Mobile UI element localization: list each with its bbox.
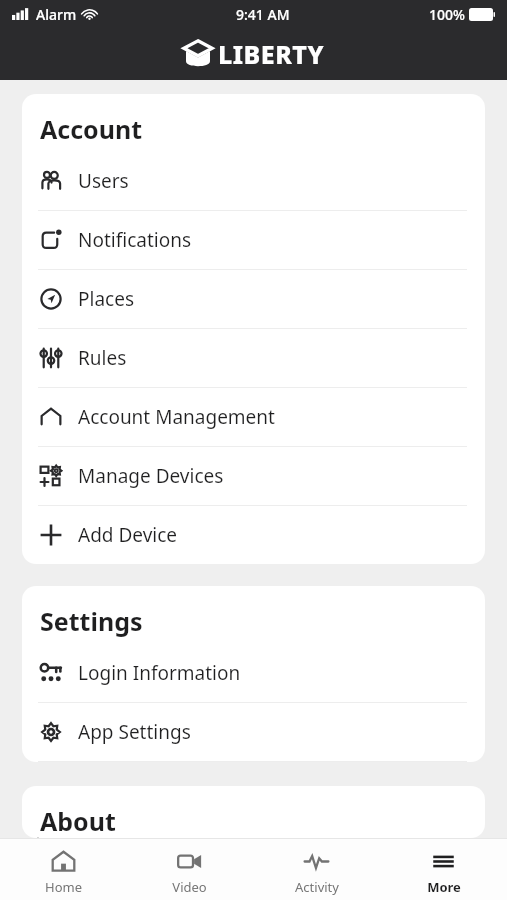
- staticText: Places: [78, 286, 134, 312]
- staticText: About: [40, 804, 116, 832]
- button[interactable]: Activity: [253, 844, 380, 896]
- button[interactable]: Home: [0, 844, 126, 896]
- staticText: Account: [40, 112, 143, 146]
- staticText: Account Management: [78, 404, 275, 430]
- button[interactable]: Users: [22, 152, 485, 211]
- staticText: Add Device: [78, 522, 178, 548]
- staticText: More: [427, 878, 461, 896]
- button[interactable]: Notifications: [22, 211, 485, 270]
- button[interactable]: Login Information: [22, 644, 485, 703]
- button[interactable]: Video: [126, 844, 253, 896]
- button[interactable]: Account Management: [22, 388, 485, 447]
- button[interactable]: Add Device: [22, 506, 485, 564]
- staticText: App Settings: [78, 719, 191, 745]
- button[interactable]: Manage Devices: [22, 447, 485, 506]
- button[interactable]: More: [380, 844, 507, 896]
- button[interactable]: Places: [22, 270, 485, 329]
- staticText: 100%: [429, 5, 465, 24]
- staticText: Manage Devices: [78, 463, 224, 489]
- staticText: Activity: [295, 878, 339, 896]
- staticText: Alarm: [36, 5, 77, 24]
- staticText: Video: [172, 878, 207, 896]
- staticText: LIBERTY: [218, 37, 324, 71]
- staticText: Home: [45, 878, 82, 896]
- staticText: Settings: [40, 604, 143, 638]
- button[interactable]: App Settings: [22, 703, 485, 762]
- staticText: Users: [78, 168, 129, 194]
- staticText: 9:41 AM: [236, 5, 290, 24]
- button[interactable]: Rules: [22, 329, 485, 388]
- staticText: Rules: [78, 345, 127, 371]
- staticText: Notifications: [78, 227, 192, 253]
- staticText: Login Information: [78, 660, 241, 686]
